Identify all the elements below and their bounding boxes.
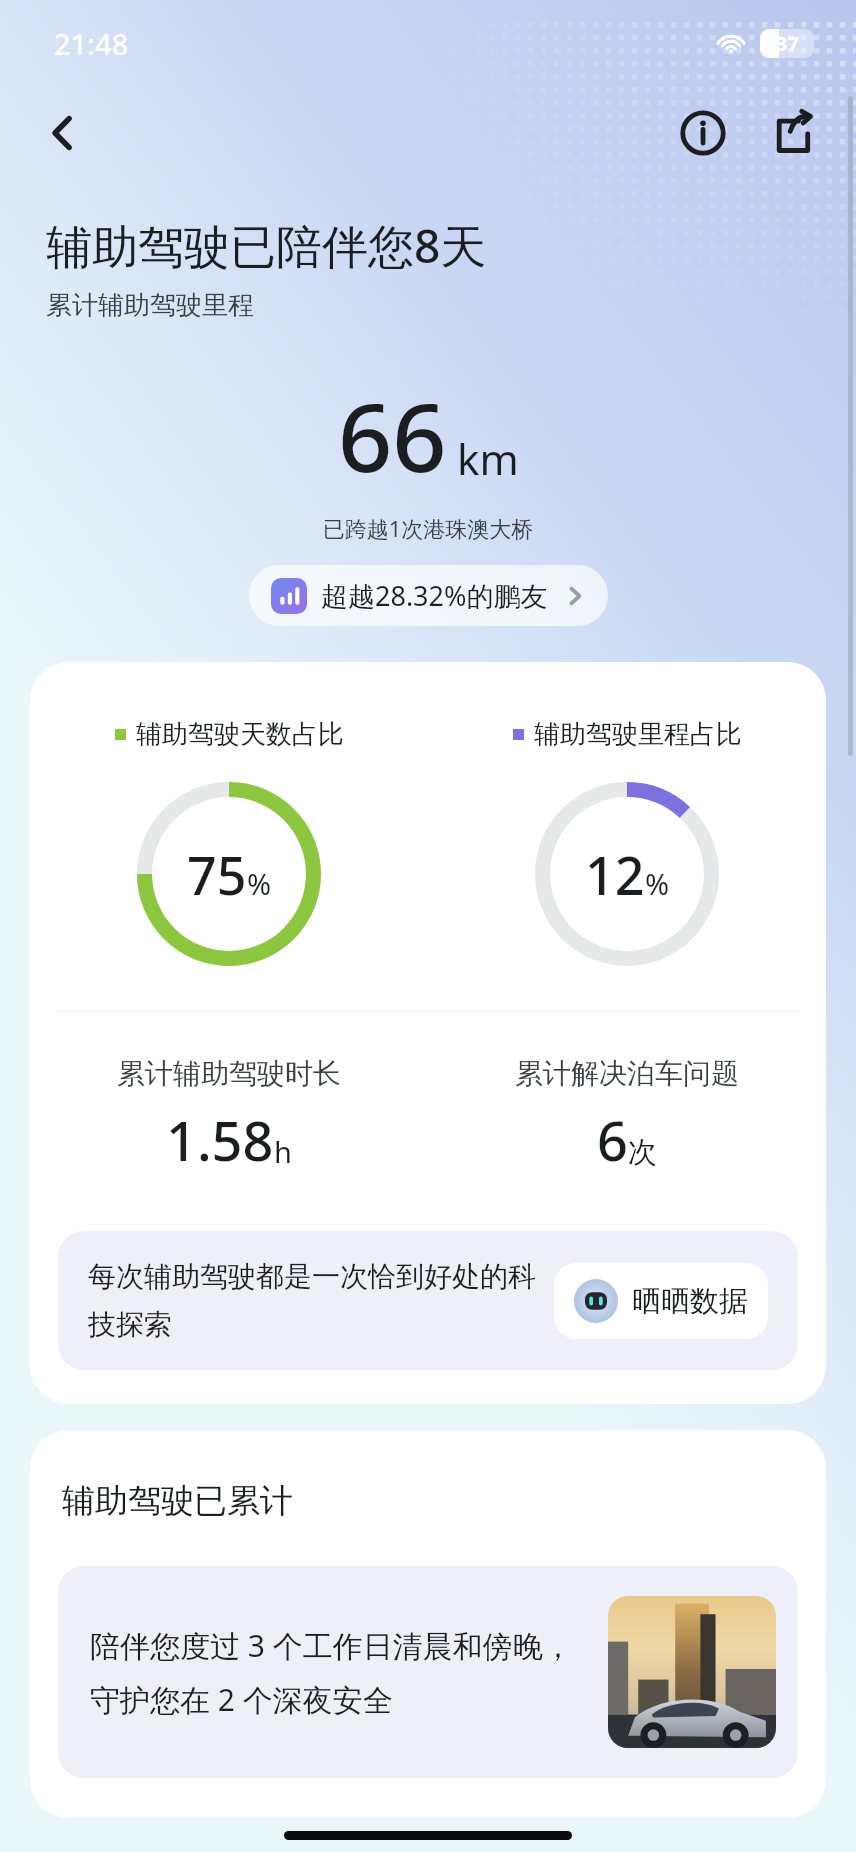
staticText: 辅助驾驶已陪伴您8天 [46,214,487,277]
staticText: 已跨越1次港珠澳大桥 [0,513,856,543]
staticText: 37 [776,30,799,57]
button[interactable]: 晒晒数据 [554,1263,768,1339]
staticText: h [274,1132,292,1171]
button[interactable]: Share [756,96,830,170]
staticText: 累计辅助驾驶时长 [117,1056,341,1091]
staticText: 晒晒数据 [632,1283,748,1320]
staticText: 陪伴您度过 3 个工作日清晨和傍晚，守护您在 2 个深夜安全 [90,1625,588,1720]
button[interactable]: Information [666,96,740,170]
staticText: 1.58 [166,1103,274,1177]
staticText: 累计辅助驾驶里程 [46,289,254,322]
staticText: 辅助驾驶已累计 [62,1480,293,1522]
staticText: % [645,864,670,903]
staticText: 辅助驾驶里程占比 [534,718,742,751]
staticText: 辅助驾驶天数占比 [136,718,344,751]
staticText: % [247,864,272,903]
staticText: km [457,430,519,487]
staticText: 超越28.32%的鹏友 [321,577,548,614]
staticText: 累计解决泊车问题 [515,1056,739,1091]
staticText: 21:48 [54,24,129,63]
staticText: 6 [597,1103,628,1177]
button[interactable]: 超越28.32%的鹏友 [249,565,608,626]
staticText: 12 [585,839,645,910]
staticText: 每次辅助驾驶都是一次恰到好处的科技探索 [88,1259,538,1342]
staticText: 66 [338,370,447,499]
staticText: 75 [187,839,247,910]
staticText: 次 [628,1134,657,1171]
button[interactable]: Back [26,96,100,170]
